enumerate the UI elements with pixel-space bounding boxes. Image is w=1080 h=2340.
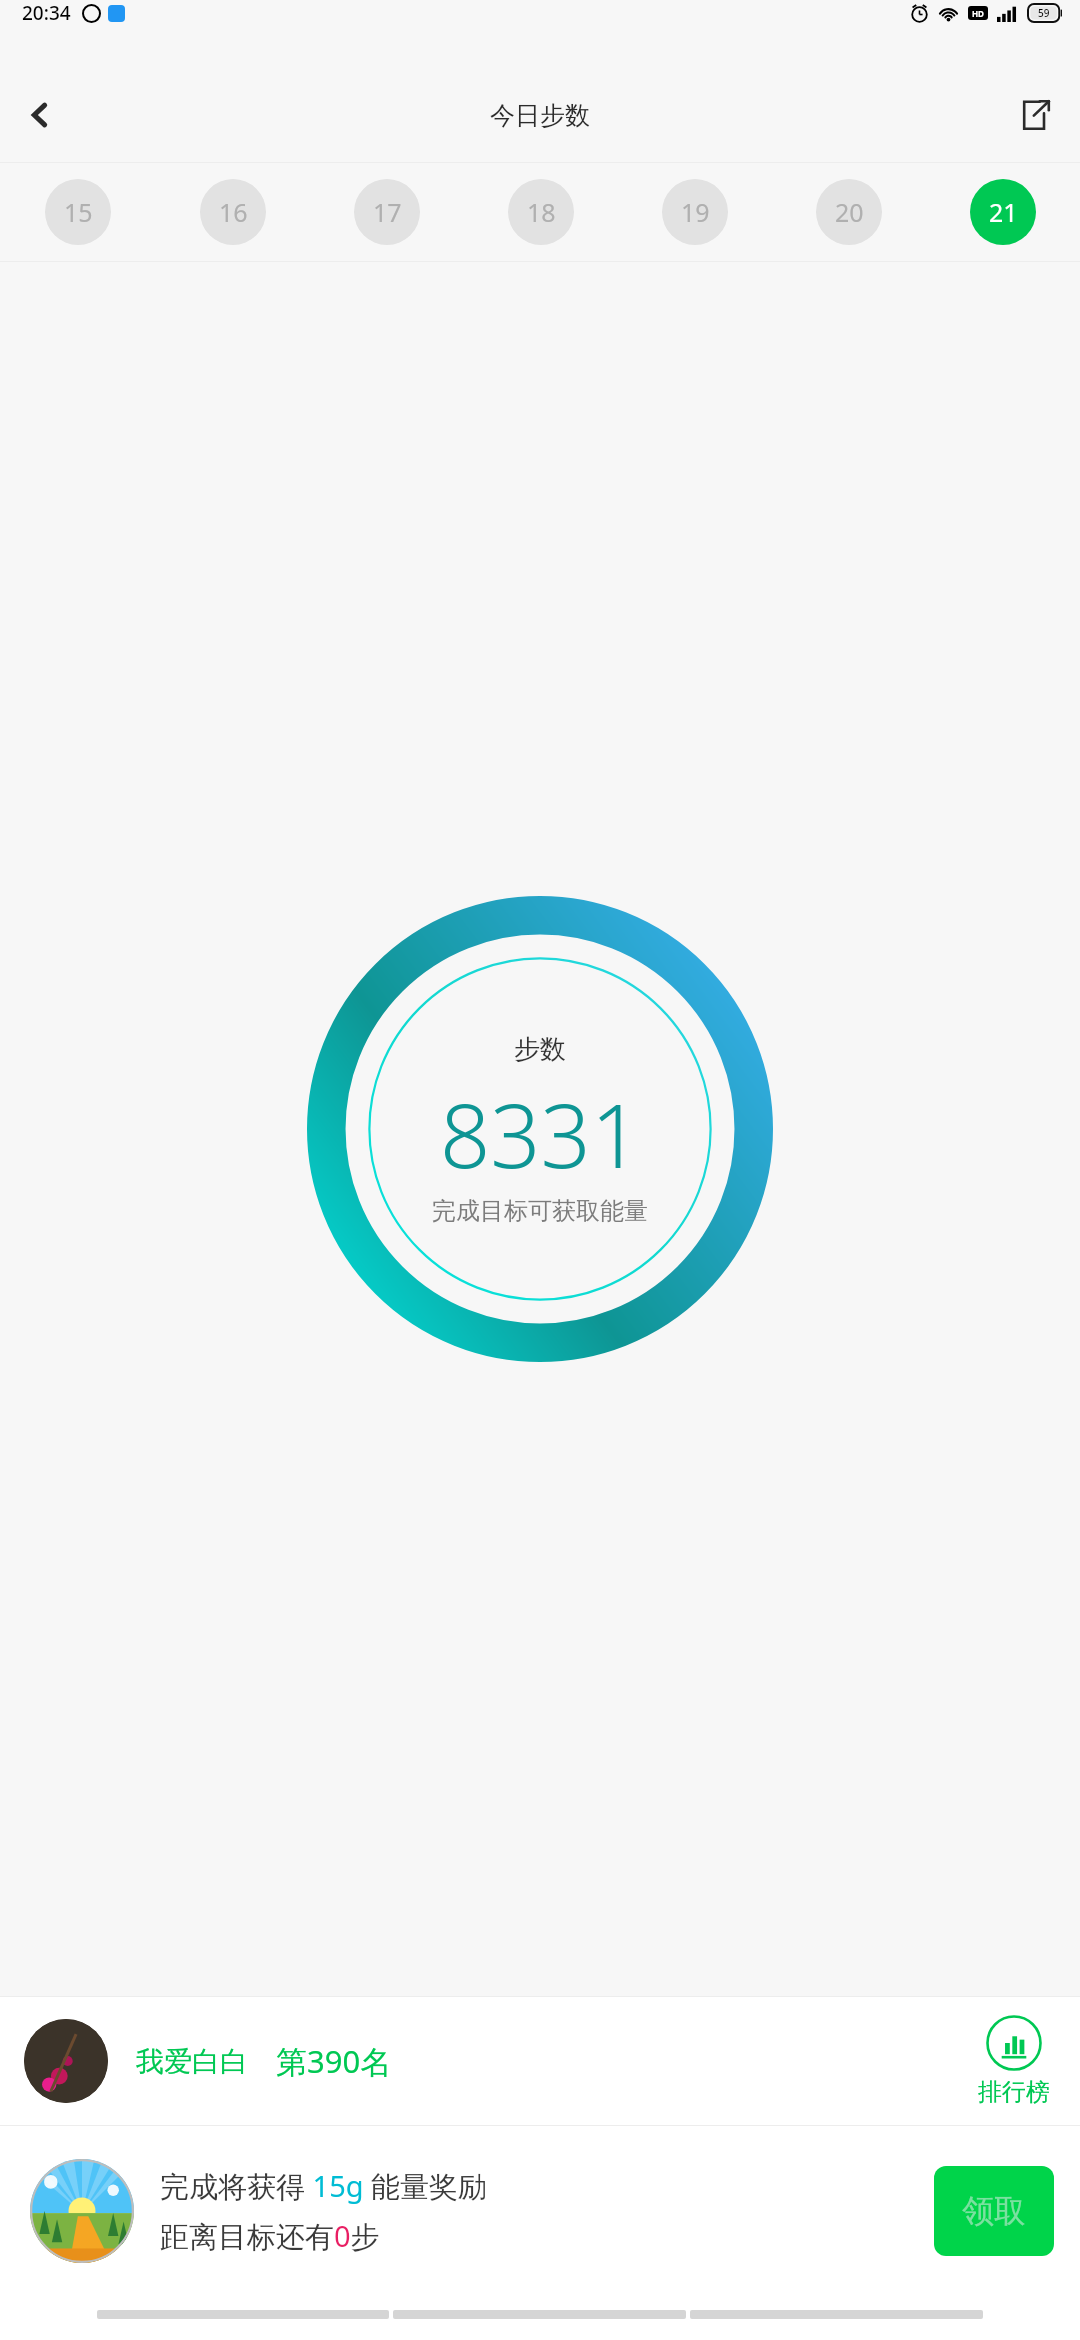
staticText: 步数 [514, 1033, 566, 1066]
staticText: 16 [219, 195, 248, 229]
button[interactable]: Share [1004, 84, 1066, 146]
staticText: 领取 [962, 2191, 1026, 2231]
staticText: 15 [64, 195, 93, 229]
staticText: HD [972, 8, 984, 19]
staticText: 59 [1038, 6, 1050, 20]
staticText: 距离目标还有0步 [160, 2216, 380, 2256]
staticText: 完成目标可获取能量 [432, 1196, 648, 1226]
staticText: 21 [989, 195, 1018, 229]
button[interactable]: 20 [816, 179, 882, 245]
button[interactable]: 19 [662, 179, 728, 245]
button[interactable]: 16 [200, 179, 266, 245]
staticText: 20 [835, 195, 864, 229]
button[interactable]: 领取 [934, 2166, 1054, 2256]
button[interactable]: 17 [354, 179, 420, 245]
staticText: 17 [373, 195, 402, 229]
button[interactable]: 21 [970, 179, 1036, 245]
button[interactable]: Back [8, 83, 72, 147]
staticText: 8331 [440, 1074, 641, 1194]
staticText: 20:34 [22, 0, 71, 26]
button[interactable]: 18 [508, 179, 574, 245]
staticText: 19 [681, 195, 710, 229]
staticText: 第390名 [276, 2040, 392, 2082]
staticText: 排行榜 [978, 2077, 1050, 2107]
staticText: 我爱白白 [136, 2044, 248, 2079]
staticText: 18 [527, 195, 556, 229]
staticText: 完成将获得 15g 能量奖励 [160, 2166, 488, 2206]
button[interactable]: 我爱白白 [0, 1997, 1080, 2125]
button[interactable]: 排行榜 [972, 2015, 1056, 2107]
staticText: 今日步数 [490, 100, 590, 131]
button[interactable]: 15 [45, 179, 111, 245]
